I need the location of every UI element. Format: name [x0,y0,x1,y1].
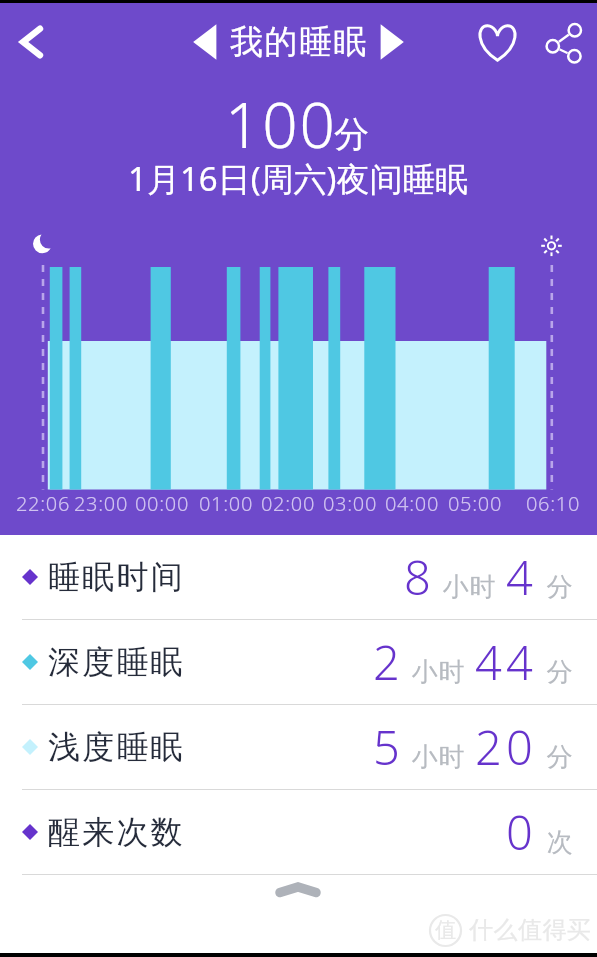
button[interactable]: Collapse [272,881,324,905]
staticText: 23:00 [61,490,141,517]
staticText: 06:10 [513,490,593,517]
staticText: 0 [506,800,538,864]
staticText: 分 [546,741,573,774]
button[interactable]: 醒来次数 [0,790,597,874]
button[interactable]: 浅度睡眠 [0,705,597,789]
staticText: 4 [506,545,538,609]
button[interactable]: 我的睡眠 [191,21,406,63]
staticText: 22:06 [3,490,83,517]
button[interactable]: Favorite [476,23,519,63]
staticText: 20 [475,715,538,779]
staticText: 01:00 [186,490,266,517]
staticText: 分 [546,571,573,604]
staticText: 深度睡眠 [48,642,185,682]
staticText: 分 [334,112,369,156]
staticText: 44 [475,630,538,694]
staticText: 05:00 [435,490,515,517]
staticText: 小时 [411,656,465,689]
staticText: 浅度睡眠 [48,727,185,767]
button[interactable]: Share [544,23,584,63]
staticText: 00:00 [122,490,202,517]
staticText: 次 [546,826,573,859]
staticText: 小时 [442,571,496,604]
staticText: 1月16日(周六)夜间睡眠 [128,156,469,201]
staticText: 分 [546,656,573,689]
staticText: 醒来次数 [48,812,185,852]
button[interactable]: Back [15,20,47,64]
staticText: 小时 [411,741,465,774]
staticText: 02:00 [248,490,328,517]
staticText: 5 [373,715,405,779]
staticText: 值 [435,917,456,943]
button[interactable]: 睡眠时间 [0,535,597,619]
staticText: 什么值得买 [469,915,591,945]
staticText: 100 [225,82,337,166]
button[interactable]: 深度睡眠 [0,620,597,704]
staticText: 8 [404,545,436,609]
staticText: 2 [373,630,405,694]
staticText: 我的睡眠 [230,21,369,63]
staticText: 04:00 [372,490,452,517]
staticText: 睡眠时间 [48,557,185,597]
staticText: 03:00 [310,490,390,517]
